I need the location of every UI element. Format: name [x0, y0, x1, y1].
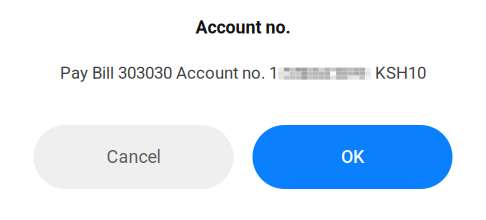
button[interactable]: OK	[252, 125, 452, 189]
staticText: Account no.	[195, 17, 290, 38]
button[interactable]: Cancel	[33, 125, 233, 189]
staticText: KSH10	[371, 63, 426, 83]
staticText: Pay Bill 303030 Account no. 1	[60, 63, 278, 83]
staticText: Cancel	[106, 146, 160, 167]
staticText: OK	[341, 146, 364, 167]
